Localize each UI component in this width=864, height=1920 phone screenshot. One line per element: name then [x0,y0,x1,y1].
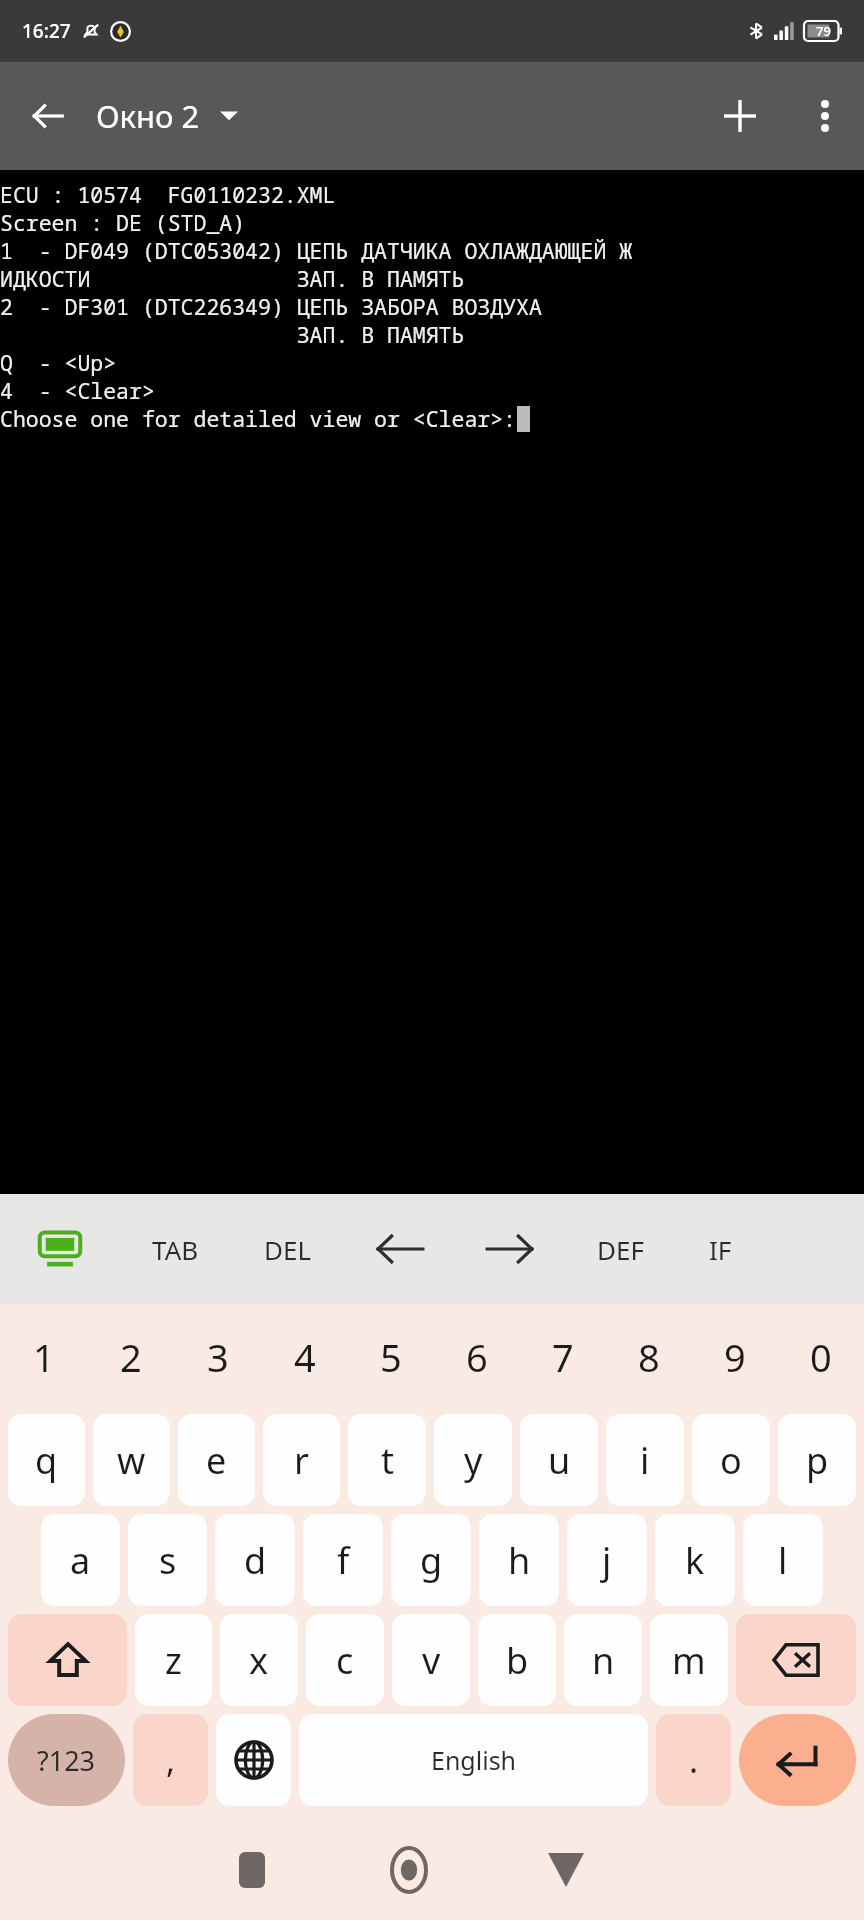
staticText: w [117,1436,146,1485]
button[interactable]: Shift [8,1614,127,1706]
button[interactable]: d [215,1514,295,1606]
staticText: 9 [724,1331,746,1383]
staticText: l [778,1536,788,1585]
staticText: 2 - DF301 (DTC226349) ЦЕПЬ ЗАБОРА ВОЗДУХ… [0,292,542,320]
button[interactable]: Enter [739,1714,856,1806]
button[interactable]: b [478,1614,556,1706]
staticText: 1 [33,1331,55,1383]
staticText: ИДКОСТИ ЗАП. В ПАМЯТЬ [0,264,465,292]
staticText: Choose one for detailed view or <Clear>: [0,404,517,433]
button[interactable]: Right [455,1194,565,1304]
staticText: DEL [264,1232,312,1267]
button[interactable]: i [606,1414,684,1506]
button[interactable]: English [299,1714,648,1806]
button[interactable]: a [41,1514,120,1606]
staticText: , [166,1737,176,1783]
button[interactable]: l [743,1514,823,1606]
staticText: a [70,1536,91,1585]
button[interactable]: Back [0,62,96,170]
button[interactable]: . [656,1714,731,1806]
staticText: 2 [120,1331,142,1383]
button[interactable]: DEL [230,1194,345,1304]
button[interactable]: Back [487,1820,644,1920]
button[interactable]: 4 [261,1304,348,1410]
staticText: 1 - DF049 (DTC053042) ЦЕПЬ ДАТЧИКА ОХЛАЖ… [0,236,633,264]
staticText: q [35,1436,58,1485]
button[interactable]: r [263,1414,340,1506]
button[interactable]: m [650,1614,728,1706]
staticText: 4 [294,1331,316,1383]
button[interactable]: 3 [174,1304,261,1410]
button[interactable]: s [128,1514,207,1606]
button[interactable]: Recent apps [173,1820,330,1920]
button[interactable]: IF [675,1194,765,1304]
button[interactable]: 0 [778,1304,864,1410]
staticText: ?123 [37,1742,96,1779]
button[interactable]: e [178,1414,255,1506]
button[interactable]: Left [345,1194,455,1304]
staticText: h [508,1536,531,1585]
button[interactable]: 7 [520,1304,606,1410]
staticText: k [685,1536,705,1585]
button[interactable]: p [778,1414,856,1506]
button[interactable]: 9 [692,1304,778,1410]
staticText: n [592,1636,615,1685]
staticText: 4 - <Clear> [0,376,155,404]
staticText: u [548,1436,571,1485]
button[interactable]: DEF [565,1194,675,1304]
button[interactable]: ?123 [8,1714,125,1806]
staticText: d [244,1536,267,1585]
staticText: x [249,1636,269,1685]
button[interactable]: Окно 2 [96,62,238,170]
button[interactable]: 8 [606,1304,692,1410]
button[interactable]: w [93,1414,170,1506]
button[interactable]: TAB [120,1194,230,1304]
button[interactable]: 6 [434,1304,520,1410]
button[interactable]: Home [330,1820,487,1920]
button[interactable]: Backspace [736,1614,856,1706]
staticText: English [431,1743,517,1777]
button[interactable]: f [303,1514,383,1606]
button[interactable]: Toggle terminal [0,1194,120,1304]
button[interactable]: 2 [87,1304,174,1410]
staticText: ECU : 10574 FG0110232.XML [0,180,336,208]
button[interactable]: c [306,1614,384,1706]
button[interactable]: x [220,1614,298,1706]
staticText: r [294,1436,309,1485]
staticText: TAB [152,1232,199,1267]
button[interactable]: Change language [216,1714,291,1806]
button[interactable]: t [348,1414,426,1506]
staticText: 16:27 [22,18,71,44]
button[interactable]: h [479,1514,559,1606]
button[interactable]: y [434,1414,512,1506]
staticText: Q - <Up> [0,348,117,376]
button[interactable]: n [564,1614,642,1706]
button[interactable]: q [8,1414,85,1506]
button[interactable]: z [135,1614,212,1706]
button[interactable]: u [520,1414,598,1506]
staticText: 5 [380,1331,402,1383]
button[interactable]: g [391,1514,471,1606]
button[interactable]: v [392,1614,470,1706]
staticText: . [689,1737,699,1783]
staticText: o [720,1436,742,1485]
staticText: j [602,1536,612,1585]
staticText: DEF [597,1232,644,1267]
button[interactable]: 5 [348,1304,434,1410]
staticText: v [422,1636,441,1685]
staticText: Screen : DE (STD_A) [0,208,246,236]
staticText: 7 [552,1331,574,1383]
button[interactable]: , [133,1714,208,1806]
button[interactable]: k [655,1514,735,1606]
staticText: 6 [466,1331,488,1383]
button[interactable]: Add window [694,62,786,170]
staticText: 3 [207,1331,229,1383]
button[interactable]: More options [786,62,864,170]
button[interactable]: 1 [0,1304,87,1410]
staticText: z [165,1636,182,1685]
staticText: s [159,1536,177,1585]
staticText: 8 [638,1331,660,1383]
button[interactable]: o [692,1414,770,1506]
button[interactable]: j [567,1514,647,1606]
staticText: Окно 2 [96,95,200,137]
